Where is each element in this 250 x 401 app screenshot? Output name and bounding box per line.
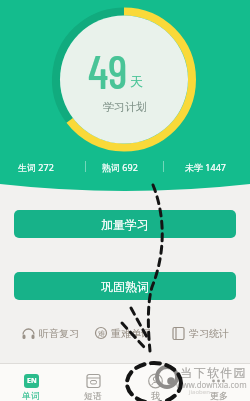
staticText: EN bbox=[27, 376, 37, 386]
staticText: 难 bbox=[98, 329, 105, 338]
button[interactable]: 加量学习 bbox=[14, 210, 236, 238]
staticText: 生词 272 bbox=[18, 161, 54, 173]
staticText: 巩固熟词 bbox=[101, 279, 149, 294]
button[interactable]: 巩固熟词 bbox=[14, 272, 236, 300]
button[interactable]: EN bbox=[0, 364, 62, 401]
button[interactable]: 未学 1447 bbox=[165, 158, 245, 175]
staticText: 单词 bbox=[22, 390, 40, 401]
staticText: jiaoben bbox=[189, 388, 210, 396]
staticText: 我 bbox=[151, 390, 160, 401]
staticText: 加量学习 bbox=[101, 217, 149, 232]
staticText: 学习统计 bbox=[189, 327, 229, 340]
staticText: 学习计划 bbox=[103, 100, 147, 114]
button[interactable]: 熟词 692 bbox=[80, 158, 160, 175]
button[interactable]: 难 bbox=[78, 322, 168, 344]
staticText: 熟词 692 bbox=[102, 161, 138, 173]
button[interactable]: 更多 bbox=[187, 364, 250, 401]
staticText: www.downxia.com bbox=[176, 379, 247, 390]
staticText: 短语 bbox=[84, 390, 102, 401]
button[interactable]: 学习统计 bbox=[155, 322, 245, 344]
staticText: 当下软件园 bbox=[180, 365, 246, 380]
staticText: 49 bbox=[88, 43, 128, 98]
button[interactable]: 生词 272 bbox=[0, 158, 76, 175]
staticText: 天 bbox=[130, 73, 143, 89]
button[interactable]: 短语 bbox=[62, 364, 124, 401]
button[interactable]: 我 bbox=[124, 364, 187, 401]
button[interactable]: 听音复习 bbox=[5, 322, 95, 344]
staticText: 听音复习 bbox=[39, 327, 79, 340]
staticText: 未学 1447 bbox=[185, 161, 226, 173]
staticText: 更多 bbox=[210, 390, 228, 401]
staticText: 重难单词 bbox=[111, 327, 151, 340]
